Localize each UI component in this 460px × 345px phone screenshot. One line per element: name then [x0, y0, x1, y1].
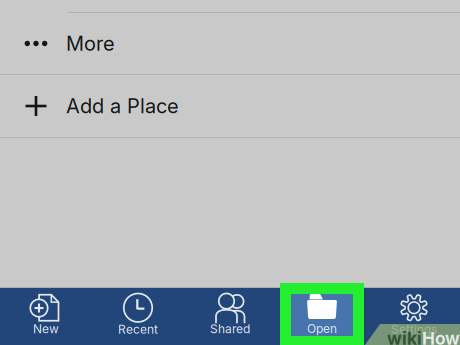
staticText: Add a Place [66, 94, 179, 118]
staticText: Open [307, 321, 337, 336]
staticText: Settings [391, 322, 437, 337]
button[interactable]: Recent [92, 288, 184, 345]
staticText: New [33, 322, 59, 336]
staticText: Shared [210, 322, 250, 336]
button[interactable]: Settings [368, 288, 460, 345]
staticText: How [422, 328, 460, 345]
button[interactable]: Add a Place [0, 75, 460, 137]
staticText: wiki [387, 328, 422, 345]
button[interactable]: New [0, 288, 92, 345]
button[interactable]: Open [276, 288, 368, 345]
staticText: Recent [118, 322, 158, 337]
button[interactable]: Shared [184, 288, 276, 345]
button[interactable]: More [0, 13, 460, 74]
staticText: More [66, 31, 115, 56]
